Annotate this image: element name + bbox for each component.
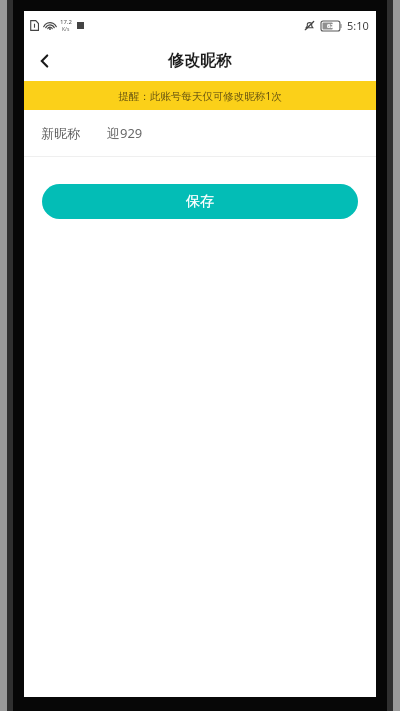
staticText: 62 (327, 22, 334, 30)
staticText: 提醒：此账号每天仅可修改昵称1次 (118, 89, 282, 103)
staticText: 新昵称 (41, 125, 80, 141)
staticText: 17.2 (60, 18, 72, 26)
staticText: 修改昵称 (168, 51, 232, 71)
button[interactable]: 新昵称 (24, 110, 376, 156)
button[interactable]: Back (24, 40, 66, 81)
button[interactable]: 保存 (42, 184, 358, 219)
staticText: 5:10 (347, 18, 369, 33)
staticText: K/s (62, 26, 70, 33)
staticText: 保存 (186, 193, 214, 211)
staticText: 迎929 (107, 124, 143, 142)
